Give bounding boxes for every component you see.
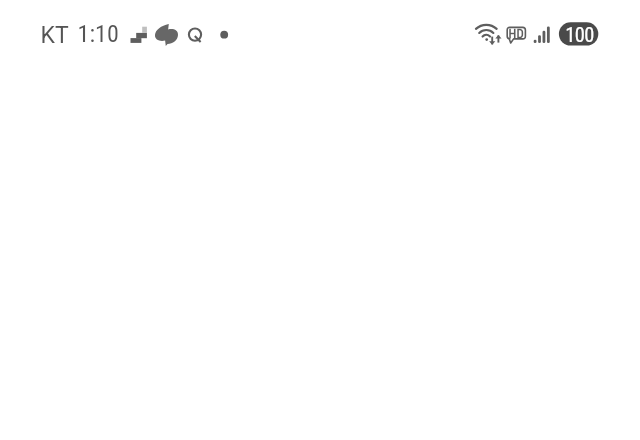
- button[interactable]: Wi-Fi connected: [470, 0, 503, 68]
- button[interactable]: Battery 100 percent: [555, 0, 600, 68]
- button[interactable]: [0, 0, 118, 68]
- button[interactable]: HD voice: [503, 0, 531, 68]
- button[interactable]: Mobile signal full: [531, 0, 555, 68]
- button[interactable]: Notifications: [118, 0, 232, 68]
